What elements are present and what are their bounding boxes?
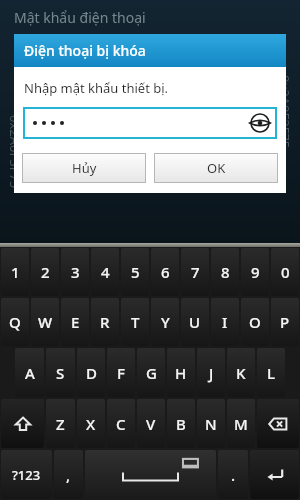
button[interactable]: D — [77, 348, 105, 397]
button[interactable]: O — [241, 298, 269, 346]
button[interactable]: , — [54, 450, 83, 499]
button[interactable]: B — [167, 399, 195, 448]
staticText: S — [56, 363, 65, 383]
staticText: X — [86, 414, 96, 434]
staticText: OK — [207, 159, 226, 177]
staticText: Hủy — [72, 159, 97, 177]
button[interactable]: Space — [85, 450, 216, 499]
button[interactable]: K — [227, 348, 255, 397]
button[interactable]: Y — [151, 298, 179, 346]
button[interactable]: M — [227, 399, 255, 448]
button[interactable]: Backspace — [257, 399, 299, 448]
staticText: 1 — [11, 262, 20, 282]
staticText: N — [205, 414, 217, 434]
staticText: 0x2A0F3F75 — [6, 115, 24, 189]
staticText: J — [209, 363, 214, 383]
staticText: H — [175, 363, 187, 383]
button[interactable]: . — [218, 450, 248, 499]
button[interactable]: 4 — [91, 248, 119, 296]
button[interactable]: F — [107, 348, 135, 397]
button[interactable]: 0 — [271, 248, 299, 296]
button[interactable]: V — [137, 399, 165, 448]
staticText: 5 — [131, 262, 140, 282]
button[interactable]: E — [61, 298, 89, 346]
staticText: Z — [56, 414, 65, 434]
staticText: P — [280, 312, 290, 332]
staticText: O — [249, 312, 261, 332]
staticText: 2 — [41, 262, 50, 282]
button[interactable]: Z — [46, 399, 75, 448]
staticText: R — [100, 312, 110, 332]
button[interactable]: P — [271, 298, 299, 346]
button[interactable]: A — [15, 348, 44, 397]
staticText: L — [267, 363, 276, 383]
button[interactable]: Show password — [23, 107, 277, 139]
staticText: 7 — [191, 262, 200, 282]
staticText: Nhập mật khẩu thiết bị. — [24, 79, 169, 97]
button[interactable]: N — [197, 399, 225, 448]
button[interactable]: U — [181, 298, 209, 346]
staticText: Y — [161, 312, 170, 332]
button[interactable]: 2 — [31, 248, 59, 296]
staticText: T — [131, 312, 140, 332]
staticText: W — [38, 312, 53, 332]
button[interactable]: 5 — [121, 248, 149, 296]
staticText: 3 — [71, 262, 80, 282]
staticText: Mật khẩu điện thoại — [14, 8, 146, 27]
button[interactable]: Enter — [250, 450, 299, 499]
staticText: Điện thoại bị khóa — [24, 41, 146, 60]
button[interactable]: X — [77, 399, 105, 448]
staticText: , — [66, 465, 71, 485]
staticText: U — [189, 312, 201, 332]
staticText: V — [146, 414, 156, 434]
button[interactable]: S — [46, 348, 75, 397]
staticText: D — [86, 363, 97, 383]
staticText: ?123 — [12, 466, 41, 484]
staticText: Q — [9, 312, 21, 332]
staticText: 0x2A0F3F75 — [276, 75, 294, 149]
button[interactable]: I — [211, 298, 239, 346]
staticText: 8 — [221, 262, 230, 282]
staticText: 9 — [251, 262, 260, 282]
button[interactable]: W — [31, 298, 59, 346]
staticText: A — [25, 363, 35, 383]
button[interactable]: 8 — [211, 248, 239, 296]
staticText: I — [222, 312, 228, 332]
button[interactable]: H — [167, 348, 195, 397]
staticText: K — [236, 363, 246, 383]
button[interactable]: 9 — [241, 248, 269, 296]
button[interactable]: ?123 — [1, 450, 52, 499]
staticText: F — [117, 363, 125, 383]
button[interactable]: Show password — [250, 113, 270, 133]
staticText: 4 — [101, 262, 110, 282]
button[interactable]: 1 — [1, 248, 29, 296]
button[interactable]: R — [91, 298, 119, 346]
button[interactable]: C — [107, 399, 135, 448]
button[interactable]: Hủy — [22, 153, 146, 183]
button[interactable]: Shift — [1, 399, 44, 448]
button[interactable]: Q — [1, 298, 29, 346]
button[interactable]: 7 — [181, 248, 209, 296]
button[interactable]: 6 — [151, 248, 179, 296]
staticText: G — [146, 363, 157, 383]
button[interactable]: T — [121, 298, 149, 346]
button[interactable]: G — [137, 348, 165, 397]
button[interactable]: OK — [154, 153, 278, 183]
staticText: C — [116, 414, 126, 434]
button[interactable]: L — [257, 348, 285, 397]
staticText: 0 — [281, 262, 290, 282]
button[interactable]: 3 — [61, 248, 89, 296]
button[interactable]: J — [197, 348, 225, 397]
staticText: M — [234, 414, 248, 434]
staticText: E — [71, 312, 80, 332]
staticText: 6 — [161, 262, 170, 282]
staticText: B — [176, 414, 186, 434]
staticText: . — [231, 465, 236, 485]
